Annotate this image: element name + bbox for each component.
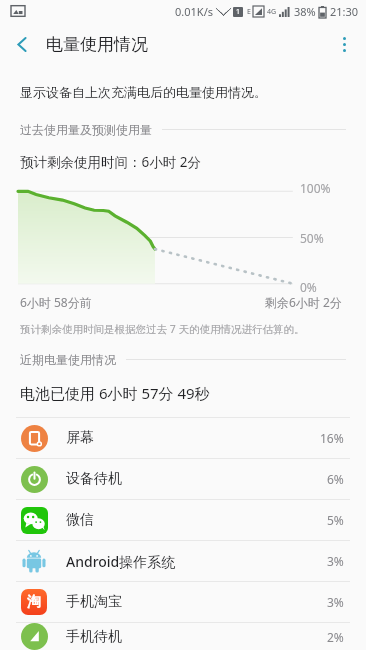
staticText: 预计剩余使用时间是根据您过去 7 天的使用情况进行估算的。 (20, 322, 305, 336)
staticText: E (247, 7, 251, 17)
button[interactable]: More options (322, 22, 366, 66)
staticText: 显示设备自上次充满电后的电量使用情况。 (20, 84, 267, 100)
staticText: 3% (327, 594, 344, 610)
staticText: 100% (300, 180, 331, 196)
staticText: 0.01K/s (175, 4, 213, 19)
staticText: 屏幕 (66, 429, 94, 447)
button[interactable]: 屏幕 (0, 418, 366, 458)
button[interactable]: 设备待机 (0, 459, 366, 499)
staticText: 16% (320, 430, 344, 446)
staticText: 0% (300, 279, 317, 295)
staticText: Android操作系统 (66, 552, 176, 571)
staticText: 3% (327, 553, 344, 569)
staticText: 剩余6小时 2分 (265, 294, 342, 310)
staticText: 过去使用量及预测使用量 (20, 122, 152, 137)
staticText: 手机淘宝 (66, 593, 122, 611)
staticText: 50% (300, 230, 324, 246)
button[interactable]: 手机待机 (0, 623, 366, 650)
staticText: 38% (294, 4, 316, 19)
staticText: 4G (267, 7, 277, 17)
staticText: 电池已使用 6小时 57分 49秒 (20, 383, 210, 403)
staticText: 微信 (66, 511, 94, 529)
button[interactable]: 微信 (0, 500, 366, 540)
staticText: 6% (327, 471, 344, 487)
staticText: 设备待机 (66, 470, 122, 488)
staticText: 5% (327, 512, 344, 528)
staticText: 2% (327, 629, 344, 645)
button[interactable]: Android操作系统 (0, 541, 366, 581)
staticText: 6小时 58分前 (20, 294, 92, 310)
staticText: 淘 (27, 593, 41, 611)
button[interactable]: 淘 (0, 582, 366, 622)
staticText: 预计剩余使用时间：6小时 2分 (20, 153, 201, 171)
staticText: 电量使用情况 (46, 34, 148, 55)
staticText: 1 (236, 7, 241, 17)
staticText: 21:30 (330, 4, 359, 19)
staticText: 近期电量使用情况 (20, 352, 116, 367)
staticText: 手机待机 (66, 628, 122, 646)
button[interactable]: Back (0, 22, 44, 66)
